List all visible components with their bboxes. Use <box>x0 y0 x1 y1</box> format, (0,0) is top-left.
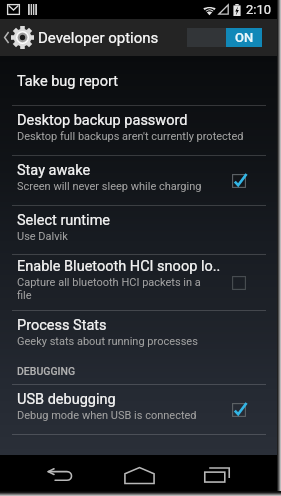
button[interactable]: Home <box>110 455 168 495</box>
staticText: Screen will never sleep while charging <box>17 180 202 193</box>
button[interactable]: Back <box>4 26 159 49</box>
staticText: Take bug report <box>17 73 118 90</box>
staticText: Select runtime <box>17 212 111 229</box>
button[interactable]: Desktop backup password <box>0 106 281 155</box>
button[interactable]: Recents <box>188 455 245 495</box>
staticText: Process Stats <box>17 317 107 334</box>
staticText: Use Dalvik <box>17 230 68 243</box>
staticText: USB debugging <box>17 391 116 408</box>
staticText: ON <box>235 30 254 45</box>
button[interactable]: Select runtime <box>0 206 281 254</box>
staticText: DEBUGGING <box>17 365 76 377</box>
staticText: Geeky stats about running processes <box>17 335 198 348</box>
button[interactable]: Back <box>32 455 89 495</box>
staticText: 2:10 <box>246 2 272 17</box>
staticText: Capture all bluetooth HCI packets in a f… <box>17 276 201 302</box>
button[interactable]: USB debugging <box>0 385 281 434</box>
button[interactable]: ON <box>187 28 262 47</box>
staticText: Stay awake <box>17 162 91 179</box>
staticText: Desktop full backups aren't currently pr… <box>17 130 244 143</box>
button[interactable]: Stay awake <box>0 156 281 205</box>
staticText: Enable Bluetooth HCI snoop lo.. <box>17 258 221 275</box>
button[interactable]: Take bug report <box>0 56 281 105</box>
other: Settings <box>11 26 34 49</box>
staticText: Developer options <box>38 29 159 47</box>
staticText: Debug mode when USB is connected <box>17 409 197 422</box>
staticText: Desktop backup password <box>17 112 188 129</box>
button[interactable]: Enable Bluetooth HCI snoop lo.. <box>0 255 281 310</box>
button[interactable]: Process Stats <box>0 311 281 357</box>
other: Back <box>4 31 9 44</box>
